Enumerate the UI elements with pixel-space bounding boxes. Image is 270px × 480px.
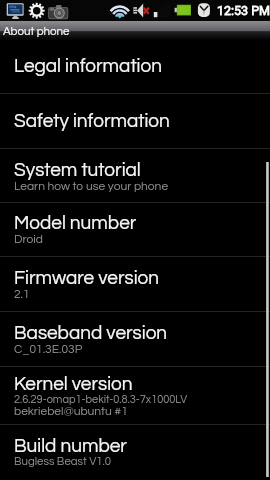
staticText: 2.1 [14,288,30,300]
staticText: Legal information [14,56,162,76]
staticText: Build number [14,436,127,456]
staticText: Baseband version [14,323,168,343]
staticText: C_01.3E.03P [14,343,83,355]
button[interactable]: Safety information [0,93,270,148]
staticText: 2.6.29-omap1-bekit-0.8.3-7x1000LV [14,394,188,405]
staticText: Bugless Beast V1.0 [14,456,112,468]
staticText: About phone [3,26,70,38]
staticText: 12:53 PM [217,3,270,18]
staticText: Kernel version [14,374,133,394]
button[interactable]: Build number [0,424,270,480]
staticText: Firmware version [14,268,160,288]
staticText: System tutorial [14,160,141,180]
button[interactable]: Model number [0,202,270,256]
button[interactable]: System tutorial [0,148,270,203]
button[interactable]: Kernel version [0,366,270,425]
staticText: Learn how to use your phone [14,180,169,192]
staticText: Safety information [14,111,170,131]
button[interactable]: Legal information [0,39,270,93]
button[interactable]: Baseband version [0,311,270,366]
staticText: Model number [14,213,137,233]
staticText: bekriebel@ubuntu #1 [14,405,128,417]
staticText: Droid [14,233,43,245]
button[interactable]: Firmware version [0,256,270,311]
